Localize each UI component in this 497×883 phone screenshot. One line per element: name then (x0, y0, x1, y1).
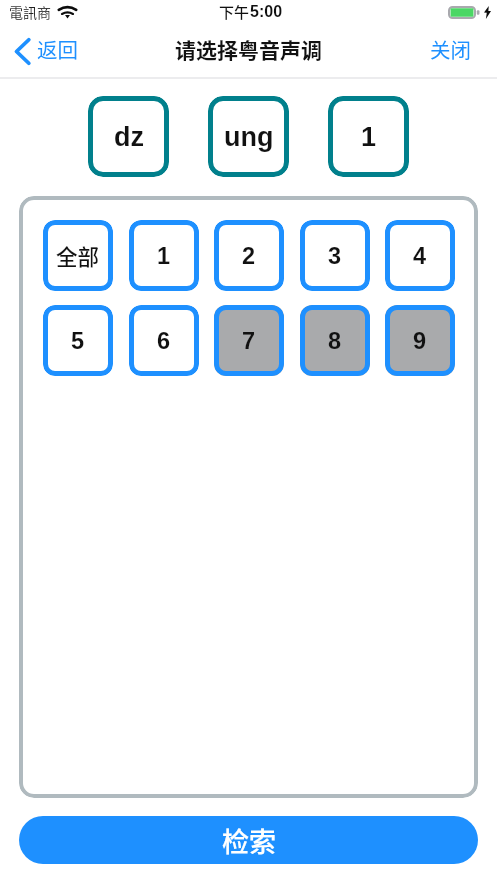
staticText: 6 (157, 328, 171, 354)
button[interactable]: dz (88, 96, 169, 177)
button[interactable]: 4 (385, 220, 455, 291)
button[interactable]: 1 (129, 220, 199, 291)
button[interactable]: ung (208, 96, 289, 177)
staticText: 7 (242, 328, 256, 354)
button[interactable]: 8 (300, 305, 370, 376)
button[interactable]: 1 (328, 96, 409, 177)
staticText: dz (114, 122, 144, 152)
button[interactable]: 2 (214, 220, 284, 291)
staticText: 3 (328, 243, 342, 269)
staticText: 1 (157, 243, 171, 269)
staticText: 返回 (37, 34, 78, 64)
staticText: 5 (71, 328, 85, 354)
button[interactable]: 9 (385, 305, 455, 376)
button[interactable]: 返回 (0, 31, 92, 75)
staticText: 電訊商 (9, 2, 51, 22)
button[interactable]: 关闭 (416, 31, 497, 75)
button[interactable]: 7 (214, 305, 284, 376)
button[interactable]: 检索 (19, 816, 478, 864)
staticText: 1 (361, 122, 377, 152)
staticText: 9 (413, 328, 427, 354)
staticText: ung (224, 122, 274, 152)
button[interactable]: 3 (300, 220, 370, 291)
staticText: 全部 (56, 240, 100, 271)
button[interactable]: 全部 (43, 220, 113, 291)
staticText: 请选择粤音声调 (175, 34, 322, 64)
staticText: 8 (328, 328, 342, 354)
staticText: 2 (242, 243, 256, 269)
staticText: 5:00 (250, 3, 283, 21)
staticText: 关闭 (430, 34, 471, 64)
staticText: 检索 (222, 821, 276, 860)
staticText: 下午 (219, 1, 250, 23)
button[interactable]: 5 (43, 305, 113, 376)
staticText: 4 (413, 243, 427, 269)
button[interactable]: 6 (129, 305, 199, 376)
